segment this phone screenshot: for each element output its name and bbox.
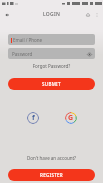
- button[interactable]: More options: [92, 10, 101, 19]
- staticText: G: [68, 113, 74, 123]
- button[interactable]: Forgot Password?: [0, 63, 103, 69]
- staticText: LOGIN: [43, 11, 61, 18]
- button[interactable]: Back: [3, 11, 11, 19]
- staticText: Email / Phone: [13, 37, 43, 43]
- button[interactable]: Email / Phone: [8, 34, 95, 45]
- button[interactable]: SUBMIT: [8, 78, 95, 90]
- button[interactable]: Show password: [86, 51, 92, 57]
- button[interactable]: Sign in with Facebook: [27, 112, 39, 124]
- staticText: REGISTER: [40, 172, 63, 178]
- button[interactable]: Password: [8, 48, 95, 59]
- button[interactable]: REGISTER: [8, 169, 95, 181]
- staticText: Don't have an account?: [0, 155, 103, 161]
- staticText: f: [32, 113, 35, 123]
- button[interactable]: Notifications: [83, 10, 92, 19]
- staticText: Password: [12, 51, 33, 57]
- staticText: SUBMIT: [42, 81, 61, 87]
- button[interactable]: Sign in with Google: [65, 112, 77, 124]
